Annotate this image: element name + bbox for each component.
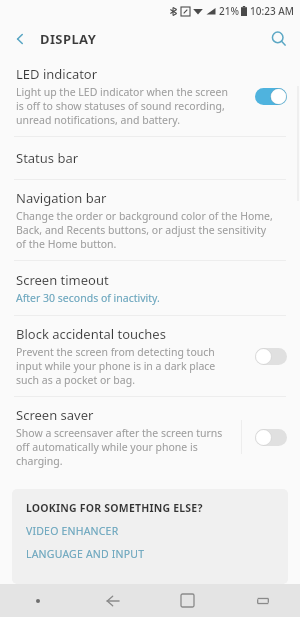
staticText: Block accidental touches <box>16 325 166 343</box>
button[interactable]: Menu <box>0 584 75 617</box>
staticText: Navigation bar <box>16 189 107 207</box>
button[interactable]: Screen saver <box>0 397 300 477</box>
staticText: Light up the LED indicator when the scre… <box>16 85 232 127</box>
staticText: Screen timeout <box>16 271 109 289</box>
button[interactable]: Status bar <box>0 137 300 179</box>
button[interactable]: LED indicator <box>0 56 300 136</box>
button[interactable]: Recents <box>225 584 300 617</box>
staticText: Screen saver <box>16 406 94 424</box>
button[interactable]: LANGUAGE AND INPUT <box>26 547 274 561</box>
staticText: Prevent the screen from detecting touch … <box>16 345 232 387</box>
staticText: Status bar <box>16 149 79 167</box>
staticText: 21% <box>219 4 239 18</box>
button[interactable]: Screen timeout <box>0 261 300 315</box>
button[interactable]: Navigation bar <box>0 180 300 260</box>
staticText: Show a screensaver after the screen turn… <box>16 426 231 468</box>
button[interactable]: Screen saver <box>242 417 300 457</box>
button[interactable]: Back <box>0 22 40 56</box>
staticText: LOOKING FOR SOMETHING ELSE? <box>26 501 203 515</box>
button[interactable]: Block accidental touches <box>0 316 300 396</box>
button[interactable]: Search <box>258 22 300 56</box>
button[interactable]: LED indicator <box>242 76 300 116</box>
staticText: DISPLAY <box>40 30 97 48</box>
staticText: Change the order or background color of … <box>16 209 274 251</box>
button[interactable]: VIDEO ENHANCER <box>26 524 274 538</box>
staticText: 10:23 AM <box>250 4 294 18</box>
button[interactable]: Block accidental touches <box>242 336 300 376</box>
staticText: LED indicator <box>16 65 98 83</box>
button[interactable]: Home <box>150 584 225 617</box>
staticText: VIDEO ENHANCER <box>26 524 119 538</box>
staticText: After 30 seconds of inactivity. <box>16 291 160 305</box>
button[interactable]: Back <box>75 584 150 617</box>
staticText: LANGUAGE AND INPUT <box>26 547 145 561</box>
